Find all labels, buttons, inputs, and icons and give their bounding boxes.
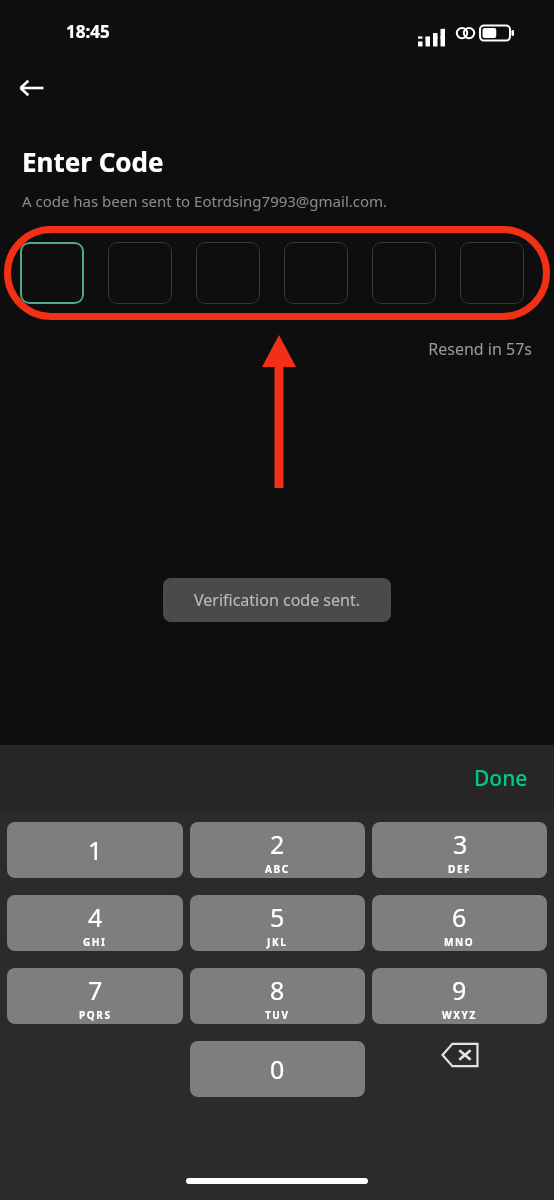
staticText: 8 — [270, 973, 285, 1007]
button[interactable]: 2 — [190, 822, 365, 878]
staticText: PQRS — [79, 1008, 112, 1022]
button[interactable]: Code digit 6 — [460, 242, 524, 304]
staticText: 3 — [453, 827, 468, 861]
staticText: Done — [474, 764, 528, 793]
button[interactable]: 9 — [372, 968, 547, 1024]
button[interactable]: Code digit 5 — [372, 242, 436, 304]
staticText: A code has been sent to Eotrdsing7993@gm… — [22, 191, 388, 211]
button[interactable]: 8 — [190, 968, 365, 1024]
button[interactable]: Code digit 3 — [196, 242, 260, 304]
button[interactable]: 5 — [190, 895, 365, 951]
staticText: 9 — [452, 973, 467, 1007]
staticText: Resend in 57s — [0, 338, 532, 360]
staticText: 6 — [452, 900, 467, 934]
staticText: JKL — [267, 935, 288, 949]
staticText: 2 — [270, 827, 285, 861]
button[interactable]: Backspace — [372, 1041, 547, 1069]
staticText: 5 — [270, 900, 285, 934]
staticText: 7 — [88, 973, 103, 1007]
staticText: ABC — [265, 862, 290, 876]
staticText: 18:45 — [66, 20, 110, 43]
staticText: GHI — [83, 935, 107, 949]
button[interactable]: Code digit 2 — [108, 242, 172, 304]
button[interactable]: 4 — [7, 895, 183, 951]
button[interactable]: 1 — [7, 822, 183, 878]
staticText: DEF — [448, 862, 472, 876]
staticText: 1 — [88, 833, 103, 867]
staticText: WXYZ — [442, 1008, 477, 1022]
staticText: MNO — [444, 935, 475, 949]
button[interactable]: Code digit 4 — [284, 242, 348, 304]
staticText: 4 — [88, 900, 103, 934]
staticText: 0 — [270, 1052, 285, 1086]
button[interactable]: Back — [8, 64, 56, 112]
button[interactable]: Done — [462, 758, 540, 799]
button[interactable]: 0 — [190, 1041, 365, 1097]
button[interactable]: 3 — [372, 822, 547, 878]
staticText: Enter Code — [22, 144, 164, 179]
staticText: TUV — [265, 1008, 290, 1022]
staticText: Verification code sent. — [194, 589, 360, 611]
button[interactable]: 6 — [372, 895, 547, 951]
button[interactable]: Code digit 1 — [20, 242, 84, 304]
button[interactable]: 7 — [7, 968, 183, 1024]
